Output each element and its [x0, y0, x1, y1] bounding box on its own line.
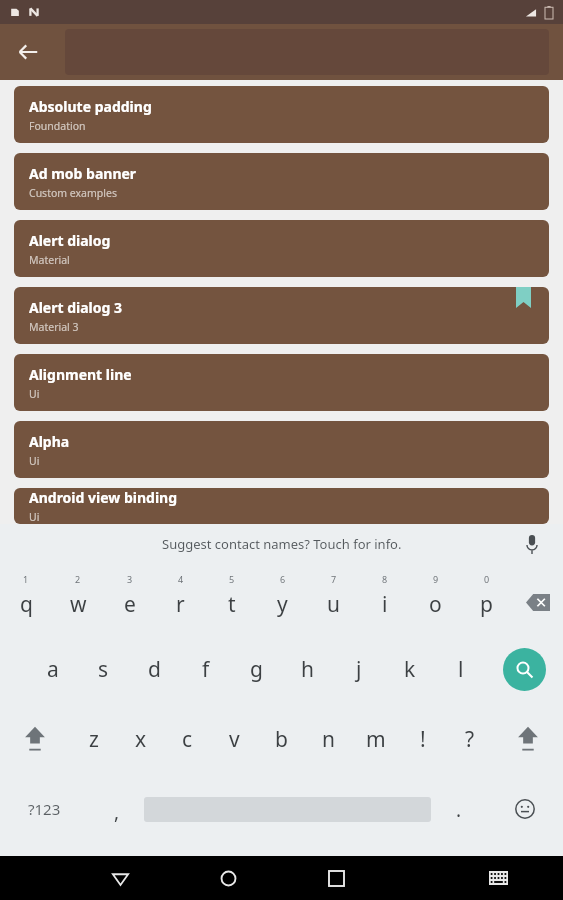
staticText: 0	[484, 573, 490, 585]
button[interactable]: l	[435, 634, 486, 704]
button[interactable]: k	[384, 634, 435, 704]
staticText: Android view binding	[29, 488, 178, 507]
staticText: v	[229, 725, 240, 754]
button[interactable]: 6	[257, 564, 308, 634]
button[interactable]: z	[70, 704, 117, 774]
button[interactable]: ?123	[0, 774, 89, 844]
staticText: i	[382, 590, 388, 619]
button[interactable]: g	[231, 634, 282, 704]
staticText: Alert dialog 3	[29, 298, 123, 317]
staticText: t	[228, 590, 236, 619]
button[interactable]: Back	[4, 28, 52, 76]
staticText: f	[202, 655, 210, 684]
staticText: h	[301, 655, 314, 684]
staticText: b	[275, 725, 288, 754]
button[interactable]: d	[129, 634, 180, 704]
button[interactable]: Android view binding	[14, 488, 549, 524]
button[interactable]: 7	[308, 564, 359, 634]
button[interactable]: !	[399, 704, 446, 774]
staticText: g	[250, 655, 263, 684]
staticText: Custom examples	[29, 186, 117, 200]
button[interactable]: c	[164, 704, 211, 774]
button[interactable]: Voice input	[517, 529, 547, 559]
staticText: 5	[229, 573, 235, 585]
staticText: y	[277, 590, 288, 619]
button[interactable]: 5	[206, 564, 257, 634]
button[interactable]: x	[117, 704, 164, 774]
button[interactable]: .	[431, 774, 486, 844]
button[interactable]: ,	[89, 774, 144, 844]
staticText: Alpha	[29, 432, 70, 451]
staticText: d	[148, 655, 161, 684]
staticText: l	[458, 655, 464, 684]
staticText: k	[404, 655, 416, 684]
button[interactable]: h	[282, 634, 333, 704]
staticText: Material	[29, 253, 70, 267]
staticText: a	[47, 655, 59, 684]
button[interactable]: m	[352, 704, 399, 774]
staticText: s	[98, 655, 109, 684]
button[interactable]: 9	[410, 564, 461, 634]
staticText: 3	[127, 573, 133, 585]
staticText: 6	[280, 573, 286, 585]
staticText: q	[20, 590, 33, 619]
staticText: n	[322, 725, 335, 754]
button[interactable]: Suggest contact names? Touch for info.	[0, 524, 563, 564]
staticText: 9	[433, 573, 439, 585]
staticText: .	[456, 797, 462, 823]
staticText: o	[429, 590, 442, 619]
button[interactable]: Shift	[493, 704, 563, 774]
button[interactable]: Alpha	[14, 421, 549, 478]
button[interactable]: Alert dialog 3	[14, 287, 549, 344]
staticText: ,	[114, 799, 120, 825]
button[interactable]: Back	[66, 856, 174, 900]
button[interactable]: b	[258, 704, 305, 774]
staticText: Foundation	[29, 119, 86, 133]
button[interactable]: 1	[0, 564, 52, 634]
staticText: Ui	[29, 387, 40, 401]
button[interactable]: s	[78, 634, 129, 704]
staticText: ?123	[28, 799, 61, 819]
staticText: Ad mob banner	[29, 164, 137, 183]
staticText: 1	[23, 573, 29, 585]
button[interactable]: 4	[155, 564, 206, 634]
button[interactable]: n	[305, 704, 352, 774]
button[interactable]: Recents	[282, 856, 390, 900]
staticText: 2	[75, 573, 81, 585]
button[interactable]: Shift	[0, 704, 70, 774]
button[interactable]: Emoji	[486, 774, 563, 844]
staticText: j	[356, 655, 362, 684]
button[interactable]: Absolute padding	[14, 86, 549, 143]
button[interactable]: Search	[486, 634, 563, 704]
button[interactable]: Alert dialog	[14, 220, 549, 277]
staticText: u	[327, 590, 340, 619]
staticText: Alignment line	[29, 365, 132, 384]
staticText: Alert dialog	[29, 231, 111, 250]
button[interactable]: a	[27, 634, 78, 704]
button[interactable]: Backspace	[512, 564, 563, 634]
staticText: 4	[178, 573, 184, 585]
button[interactable]: v	[211, 704, 258, 774]
staticText: p	[480, 590, 493, 619]
staticText: 8	[382, 573, 388, 585]
staticText: x	[135, 725, 147, 754]
button[interactable]: Switch keyboard	[450, 856, 547, 900]
button[interactable]: Alignment line	[14, 354, 549, 411]
button[interactable]: 8	[359, 564, 410, 634]
staticText: ?	[465, 725, 475, 754]
staticText: m	[366, 725, 386, 754]
button[interactable]: f	[180, 634, 231, 704]
staticText: z	[89, 725, 99, 754]
button[interactable]: j	[333, 634, 384, 704]
button[interactable]: 3	[104, 564, 155, 634]
button[interactable]: 0	[461, 564, 512, 634]
button[interactable]: 2	[52, 564, 104, 634]
staticText: Ui	[29, 454, 40, 468]
button[interactable]: Home	[174, 856, 282, 900]
button[interactable]: ?	[446, 704, 493, 774]
button[interactable]: Space	[144, 774, 431, 844]
button[interactable]: Ad mob banner	[14, 153, 549, 210]
staticText: Absolute padding	[29, 97, 152, 116]
staticText: w	[70, 590, 87, 619]
